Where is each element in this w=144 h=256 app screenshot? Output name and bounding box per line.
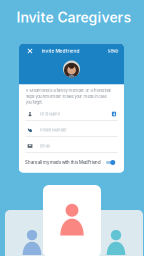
button[interactable]: Share all my meds with this MedFriend	[19, 156, 124, 168]
staticText: Invite Medfriend	[41, 48, 79, 54]
button[interactable]: Email	[19, 140, 124, 153]
staticText: Invite Caregivers	[16, 9, 131, 26]
staticText: Email	[40, 144, 50, 148]
staticText: First Name	[40, 112, 60, 116]
button[interactable]: First Name	[19, 108, 124, 121]
button[interactable]: Phone Number	[19, 124, 124, 137]
staticText: A MedFriend is a family member or a frie…	[25, 88, 110, 105]
staticText: SEND	[107, 49, 118, 53]
button[interactable]: Invite Medfriend	[38, 46, 82, 55]
staticText: Phone Number	[40, 128, 67, 132]
staticText: Share all my meds with this MedFriend	[25, 160, 101, 165]
button[interactable]: SEND	[104, 46, 122, 55]
button[interactable]: Close	[24, 45, 36, 57]
